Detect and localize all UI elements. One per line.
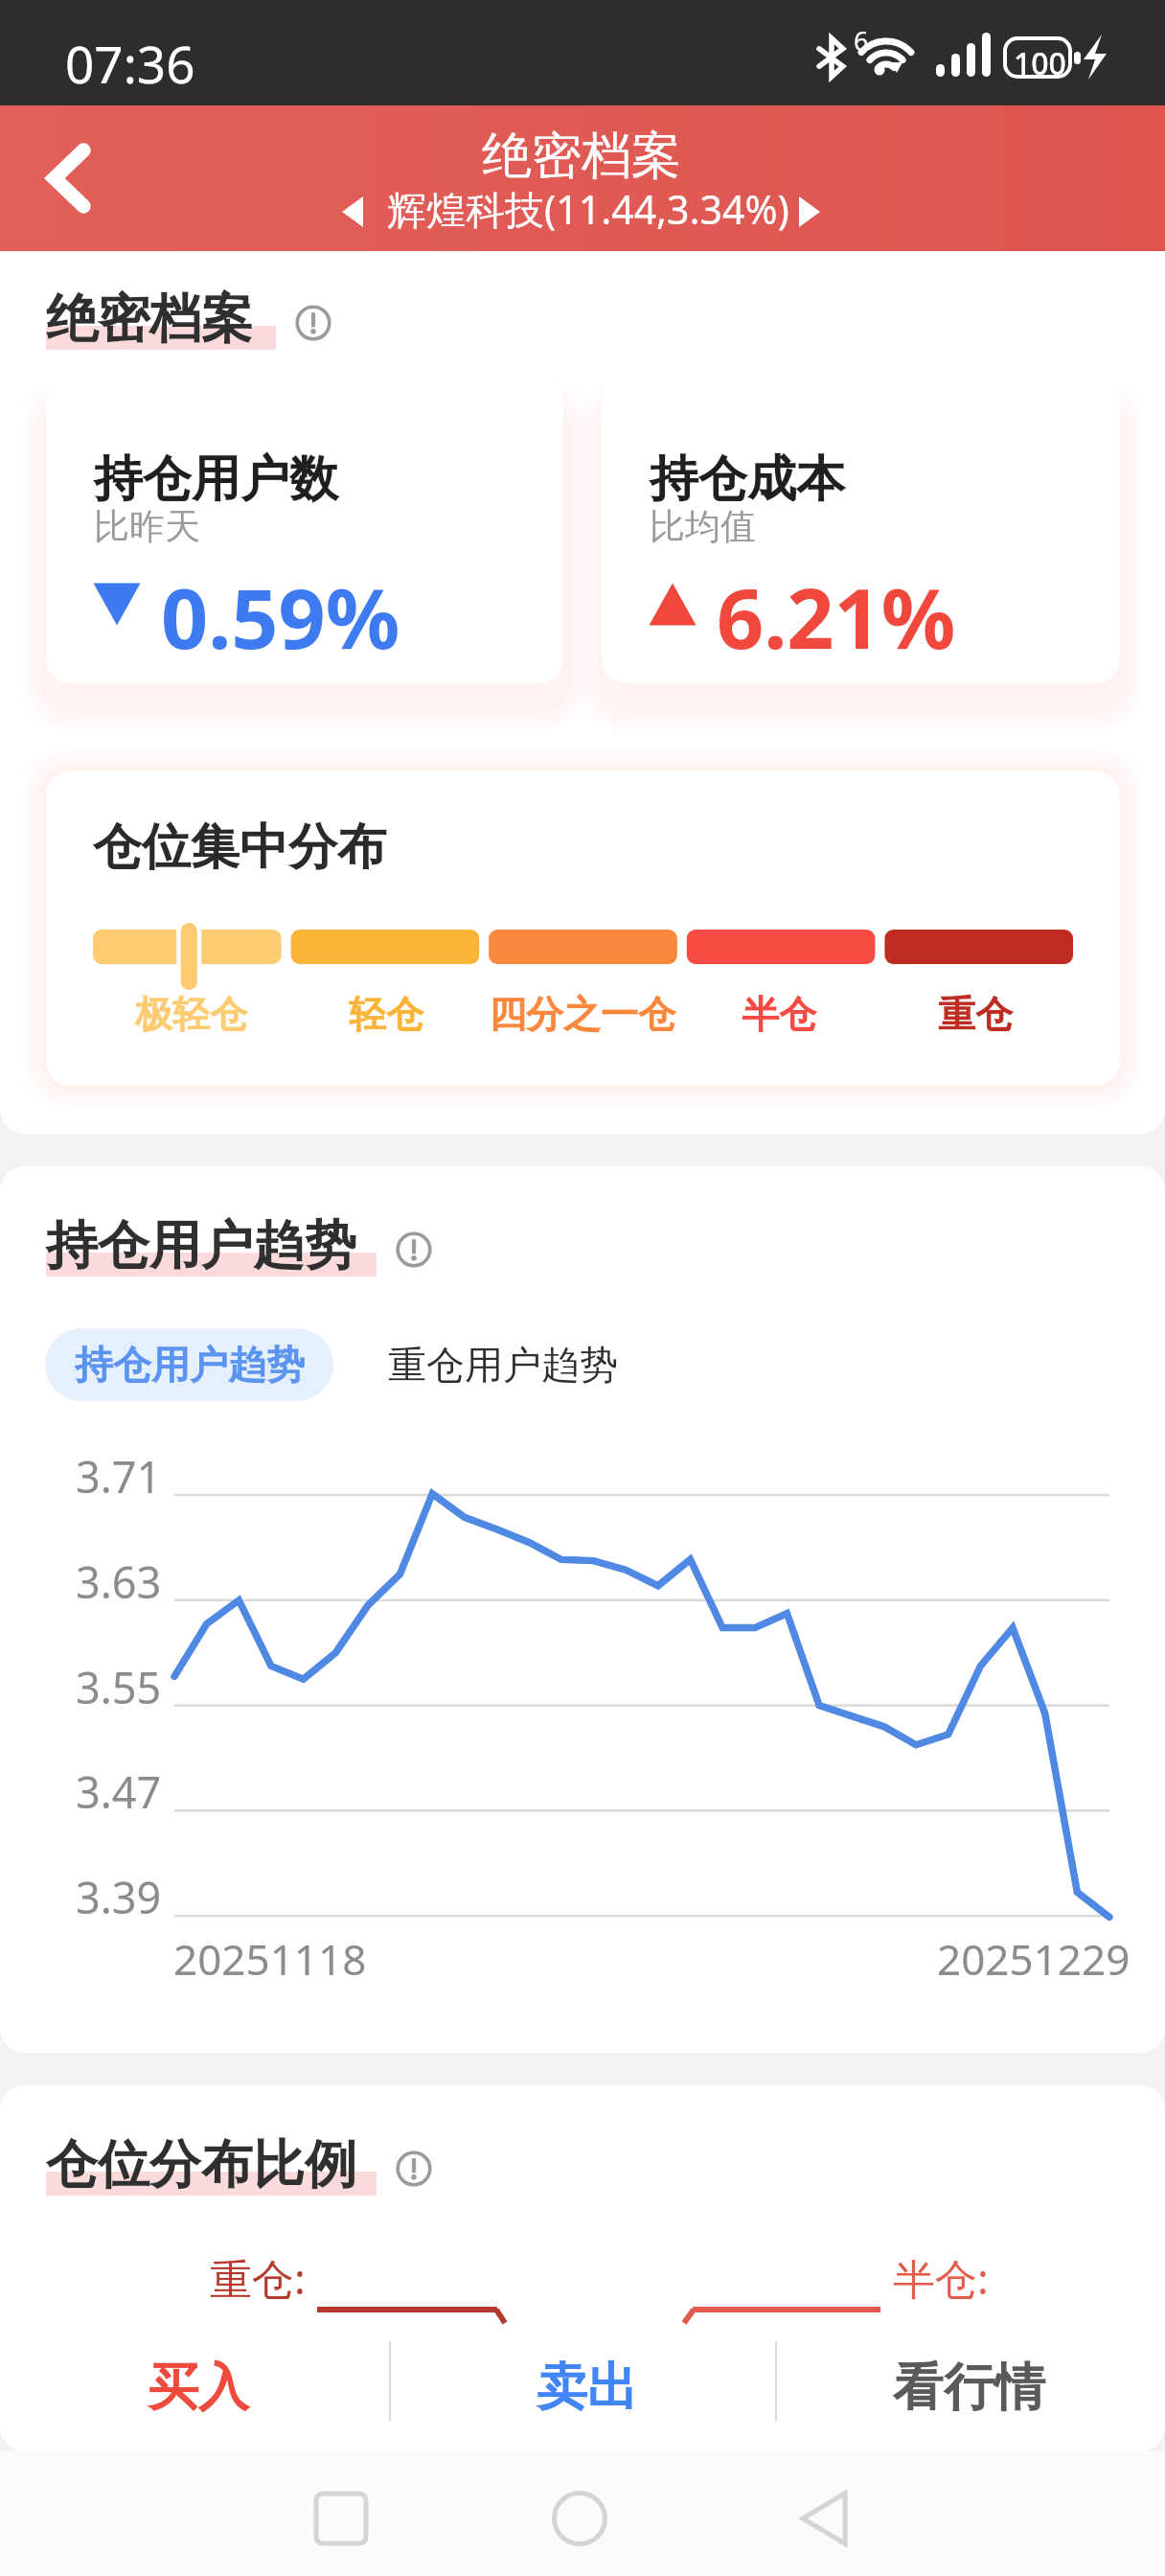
button[interactable]: 买入 <box>103 2350 294 2425</box>
button[interactable]: 持仓用户数 <box>46 378 563 683</box>
staticText: 半仓: <box>893 2249 989 2307</box>
staticText: 重仓 <box>938 991 1013 1038</box>
staticText: 重仓: <box>210 2249 306 2307</box>
staticText: 轻仓 <box>349 991 423 1038</box>
staticText: 100 <box>1014 42 1066 84</box>
staticText: 绝密档案 <box>482 125 681 188</box>
staticText: 3.55 <box>76 1658 162 1716</box>
staticText: 持仓成本 <box>650 448 845 510</box>
staticText: 极轻仓 <box>135 991 247 1038</box>
staticText: 6.21% <box>717 561 956 673</box>
staticText: 3.63 <box>76 1552 162 1611</box>
button[interactable]: 重仓用户趋势 <box>388 1328 618 1401</box>
staticText: 持仓用户趋势 <box>46 1213 356 1278</box>
staticText: 仓位集中分布 <box>93 816 386 878</box>
button[interactable]: Home <box>513 2456 647 2576</box>
button[interactable]: Recents <box>274 2456 408 2576</box>
staticText: 重仓用户趋势 <box>388 1341 618 1389</box>
button[interactable]: Back <box>23 132 115 224</box>
staticText: 绝密档案 <box>46 287 253 352</box>
button[interactable]: 看行情 <box>857 2350 1080 2425</box>
staticText: 看行情 <box>893 2356 1045 2420</box>
staticText: 20251118 <box>173 1930 367 1988</box>
button[interactable]: 持仓成本 <box>602 378 1120 683</box>
staticText: 比昨天 <box>94 504 200 549</box>
staticText: 比均值 <box>650 504 756 549</box>
button[interactable]: 持仓用户趋势 <box>45 1328 333 1401</box>
staticText: 辉煌科技(11.44,3.34%) <box>387 182 789 236</box>
staticText: 买入 <box>148 2356 249 2420</box>
staticText: 半仓 <box>742 991 816 1038</box>
staticText: 3.39 <box>76 1868 162 1926</box>
staticText: 持仓用户数 <box>94 448 338 510</box>
staticText: 四分之一仓 <box>489 991 675 1038</box>
staticText: 20251229 <box>937 1930 1131 1988</box>
button[interactable]: 卖出 <box>491 2350 683 2425</box>
staticText: 6 <box>854 23 869 58</box>
staticText: 仓位分布比例 <box>46 2132 356 2197</box>
staticText: 07:36 <box>65 29 195 98</box>
staticText: 0.59% <box>161 561 400 673</box>
staticText: 3.47 <box>76 1762 162 1821</box>
staticText: 持仓用户趋势 <box>75 1341 305 1389</box>
button[interactable]: Back <box>757 2456 891 2576</box>
staticText: 3.71 <box>76 1447 162 1506</box>
staticText: 卖出 <box>537 2356 638 2420</box>
